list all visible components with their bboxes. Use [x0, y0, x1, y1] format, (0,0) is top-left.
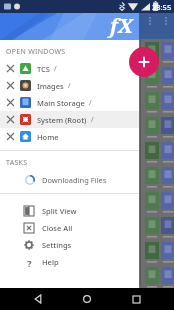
button[interactable]: Recent apps — [125, 288, 147, 310]
button[interactable]: Close Images — [0, 77, 20, 94]
staticText: TASKS — [6, 158, 28, 168]
button[interactable]: Close Main Storage — [0, 94, 20, 111]
staticText: OPEN WINDOWS — [6, 47, 66, 57]
button[interactable]: Close Main Storage — [0, 94, 139, 111]
button[interactable]: Home — [76, 288, 98, 310]
button[interactable]: Close System (Root) — [0, 111, 20, 128]
button[interactable]: Close Home — [0, 128, 139, 145]
staticText: Images — [37, 81, 64, 91]
staticText: / — [68, 81, 71, 91]
button[interactable]: Close TCS — [0, 60, 139, 77]
button[interactable]: Add — [129, 47, 159, 77]
staticText: Main Storage — [37, 98, 85, 108]
staticText: System (Root) — [37, 115, 87, 125]
staticText: Downloading Files — [42, 175, 107, 185]
staticText: Split View — [42, 206, 77, 216]
button[interactable]: Close TCS — [0, 60, 20, 77]
staticText: / — [54, 64, 57, 74]
staticText: TCS — [37, 64, 50, 74]
button[interactable]: ? — [0, 253, 139, 270]
staticText: / — [89, 98, 92, 108]
staticText: / — [91, 115, 94, 125]
button[interactable]: Downloading Files — [0, 171, 139, 188]
staticText: Settings — [42, 240, 72, 250]
staticText: Home — [37, 132, 59, 142]
staticText: fX — [110, 12, 133, 39]
button[interactable]: Close Images — [0, 77, 139, 94]
button[interactable]: Close Home — [0, 128, 20, 145]
staticText: Close All — [42, 223, 73, 233]
staticText: ? — [27, 257, 32, 267]
button[interactable]: Back — [27, 288, 49, 310]
staticText: 23:55 — [152, 2, 172, 12]
button[interactable]: Close All — [0, 219, 139, 236]
button[interactable]: Close System (Root) — [0, 111, 139, 128]
staticText: Help — [42, 257, 59, 267]
button[interactable]: Split View — [0, 202, 139, 219]
button[interactable]: Settings — [0, 236, 139, 253]
